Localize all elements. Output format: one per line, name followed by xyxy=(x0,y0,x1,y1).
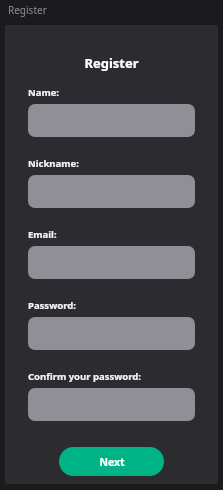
staticText: Password: xyxy=(28,299,76,312)
staticText: Register xyxy=(8,3,47,17)
button[interactable] xyxy=(28,175,195,208)
button[interactable]: Next xyxy=(59,447,164,476)
button[interactable] xyxy=(28,104,195,137)
staticText: Register xyxy=(84,54,139,72)
button[interactable] xyxy=(28,246,195,279)
button[interactable] xyxy=(28,317,195,350)
button[interactable] xyxy=(28,388,195,421)
staticText: Next xyxy=(99,455,125,469)
staticText: Email: xyxy=(28,228,57,241)
staticText: Name: xyxy=(28,86,60,99)
staticText: Nickname: xyxy=(28,157,79,170)
staticText: Confirm your password: xyxy=(28,370,141,383)
